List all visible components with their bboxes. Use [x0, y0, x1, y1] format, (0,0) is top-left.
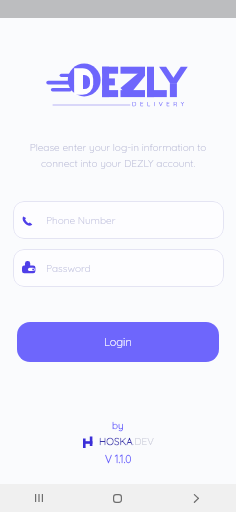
- staticText: by: [112, 419, 124, 432]
- button[interactable]: Password: [13, 249, 224, 287]
- staticText: V 1.1.0: [105, 452, 132, 465]
- button[interactable]: Back: [157, 484, 236, 512]
- staticText: Login: [104, 335, 132, 349]
- staticText: Please enter your log-in information to …: [0, 141, 236, 169]
- staticText: HOSKA.DEV: [99, 435, 154, 448]
- button[interactable]: Home: [78, 484, 157, 512]
- staticText: DELIVERY: [132, 100, 188, 108]
- staticText: Phone Number: [46, 214, 116, 227]
- button[interactable]: Login: [17, 322, 219, 362]
- button[interactable]: Phone Number: [13, 201, 224, 239]
- button[interactable]: Recent apps: [0, 484, 78, 512]
- staticText: Password: [46, 262, 91, 275]
